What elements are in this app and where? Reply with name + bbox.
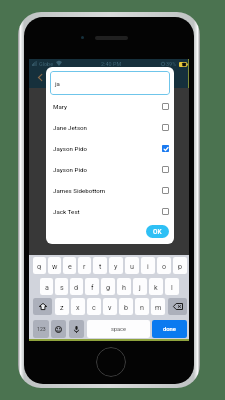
button[interactable]: n xyxy=(135,298,149,315)
staticText: m xyxy=(155,303,162,311)
button[interactable]: o xyxy=(157,257,171,274)
staticText: OK xyxy=(153,228,162,236)
button[interactable]: i xyxy=(141,257,155,274)
button[interactable]: r xyxy=(78,257,91,274)
button[interactable]: y xyxy=(109,257,123,274)
staticText: Mary xyxy=(53,103,68,110)
staticText: x xyxy=(76,303,80,311)
staticText: w xyxy=(52,262,58,270)
staticText: j xyxy=(139,283,141,291)
button[interactable]: g xyxy=(101,278,115,295)
button[interactable]: space xyxy=(87,320,150,338)
staticText: Jane Jetson xyxy=(53,124,88,131)
staticText: v xyxy=(108,303,112,311)
button[interactable]: Jane Jetson xyxy=(46,117,174,138)
staticText: n xyxy=(140,303,144,311)
button[interactable]: done xyxy=(152,320,187,338)
staticText: Jayson Pido xyxy=(53,145,87,152)
staticText: 123 xyxy=(37,326,46,332)
button[interactable]: u xyxy=(125,257,139,274)
button[interactable]: c xyxy=(87,298,101,315)
button[interactable]: Backspace xyxy=(168,298,187,315)
button[interactable]: ja xyxy=(50,71,170,95)
button[interactable]: z xyxy=(55,298,69,315)
button[interactable]: p xyxy=(173,257,187,274)
button[interactable]: s xyxy=(55,278,68,295)
staticText: Globe xyxy=(39,61,54,67)
staticText: 39% xyxy=(166,61,177,67)
staticText: r xyxy=(83,262,86,270)
button[interactable]: h xyxy=(117,278,131,295)
staticText: space xyxy=(111,326,126,333)
button[interactable]: m xyxy=(151,298,165,315)
staticText: t xyxy=(99,262,102,270)
button[interactable]: 123 xyxy=(33,320,49,338)
button[interactable]: Jayson Pido xyxy=(46,159,174,180)
button[interactable]: Jayson Pido xyxy=(46,138,174,159)
button[interactable]: Back xyxy=(38,74,42,81)
staticText: e xyxy=(68,262,72,270)
staticText: Jayson Pido xyxy=(53,166,87,173)
button[interactable]: k xyxy=(149,278,163,295)
staticText: done xyxy=(163,326,176,333)
staticText: y xyxy=(114,262,118,270)
staticText: p xyxy=(178,262,183,270)
button[interactable]: Jack Test xyxy=(46,201,174,222)
staticText: g xyxy=(106,283,111,291)
staticText: l xyxy=(171,283,173,291)
staticText: b xyxy=(124,303,129,311)
staticText: a xyxy=(45,283,49,291)
button[interactable]: James Sidebottom xyxy=(46,180,174,201)
staticText: o xyxy=(162,262,167,270)
button[interactable]: q xyxy=(33,257,46,274)
button[interactable]: x xyxy=(71,298,85,315)
staticText: q xyxy=(37,262,42,270)
button[interactable]: l xyxy=(165,278,179,295)
button[interactable]: Shift xyxy=(33,298,52,315)
staticText: c xyxy=(92,303,96,311)
staticText: f xyxy=(91,283,94,291)
staticText: u xyxy=(130,262,134,270)
staticText: h xyxy=(122,283,126,291)
staticText: z xyxy=(60,303,64,311)
button[interactable]: a xyxy=(40,278,53,295)
button[interactable]: t xyxy=(93,257,107,274)
staticText: s xyxy=(60,283,64,291)
staticText: Jack Test xyxy=(53,208,80,215)
button[interactable]: Mary xyxy=(46,96,174,117)
button[interactable]: Emoji xyxy=(51,320,66,338)
staticText: James Sidebottom xyxy=(53,187,106,194)
button[interactable]: b xyxy=(119,298,133,315)
button[interactable]: e xyxy=(63,257,76,274)
button[interactable]: OK xyxy=(146,225,169,238)
staticText: 2:40 PM xyxy=(101,61,122,67)
button[interactable]: j xyxy=(133,278,147,295)
staticText: i xyxy=(147,262,149,270)
staticText: ja xyxy=(55,80,60,87)
staticText: k xyxy=(154,283,158,291)
button[interactable]: Dictate xyxy=(69,320,84,338)
button[interactable]: d xyxy=(70,278,83,295)
button[interactable]: v xyxy=(103,298,117,315)
button[interactable]: w xyxy=(48,257,61,274)
button[interactable]: f xyxy=(85,278,99,295)
staticText: d xyxy=(74,283,79,291)
